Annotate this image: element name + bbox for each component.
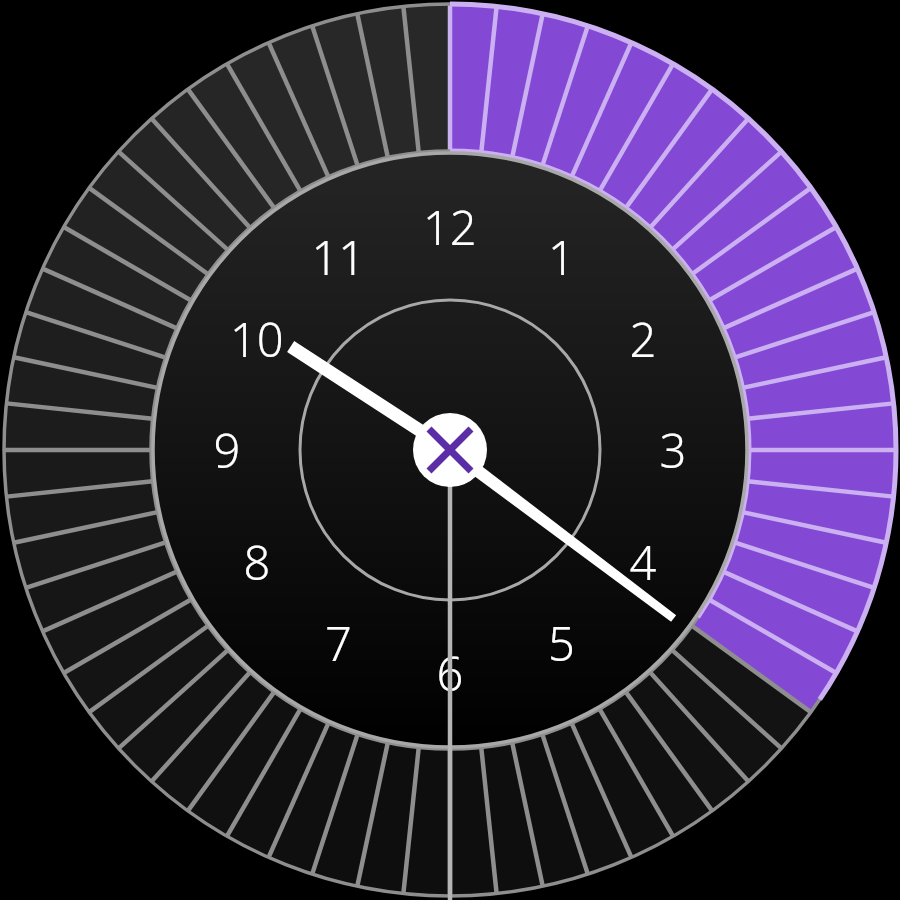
- button[interactable]: Analog watch face with purple progress r…: [0, 0, 900, 900]
